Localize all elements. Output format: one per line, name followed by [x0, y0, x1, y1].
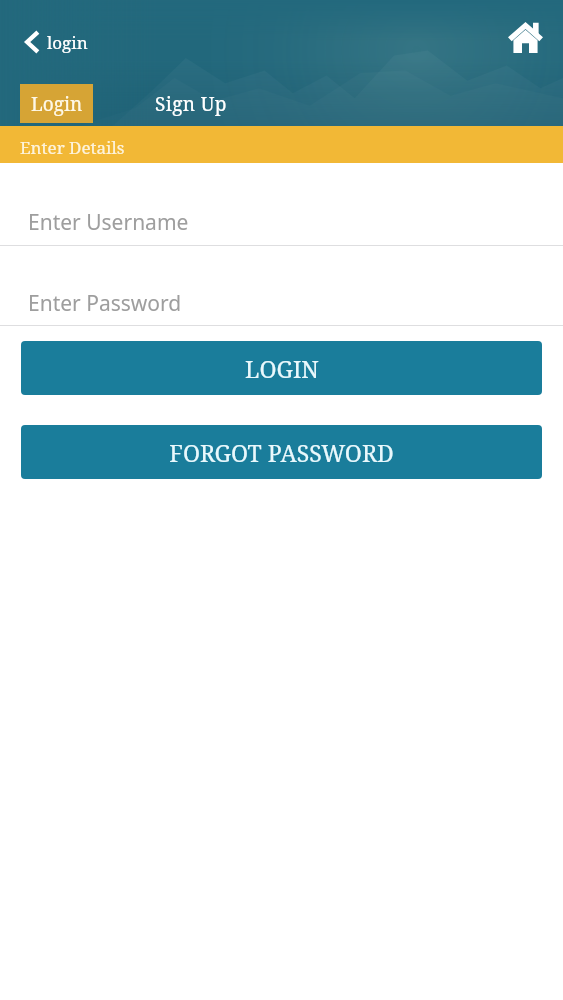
- staticText: Sign Up: [155, 91, 227, 117]
- button[interactable]: Enter Password: [0, 246, 563, 326]
- button[interactable]: Home: [504, 16, 546, 58]
- button[interactable]: Login: [20, 84, 93, 123]
- staticText: LOGIN: [245, 353, 319, 384]
- staticText: login: [47, 31, 88, 54]
- staticText: Enter Username: [28, 208, 189, 237]
- staticText: Login: [31, 91, 83, 117]
- button[interactable]: FORGOT PASSWORD: [21, 425, 542, 479]
- button[interactable]: Sign Up: [150, 84, 232, 123]
- staticText: Enter Details: [20, 136, 125, 159]
- button[interactable]: Enter Username: [0, 163, 563, 246]
- staticText: FORGOT PASSWORD: [169, 437, 394, 468]
- button[interactable]: LOGIN: [21, 341, 542, 395]
- button[interactable]: login: [21, 27, 92, 57]
- staticText: Enter Password: [28, 289, 182, 318]
